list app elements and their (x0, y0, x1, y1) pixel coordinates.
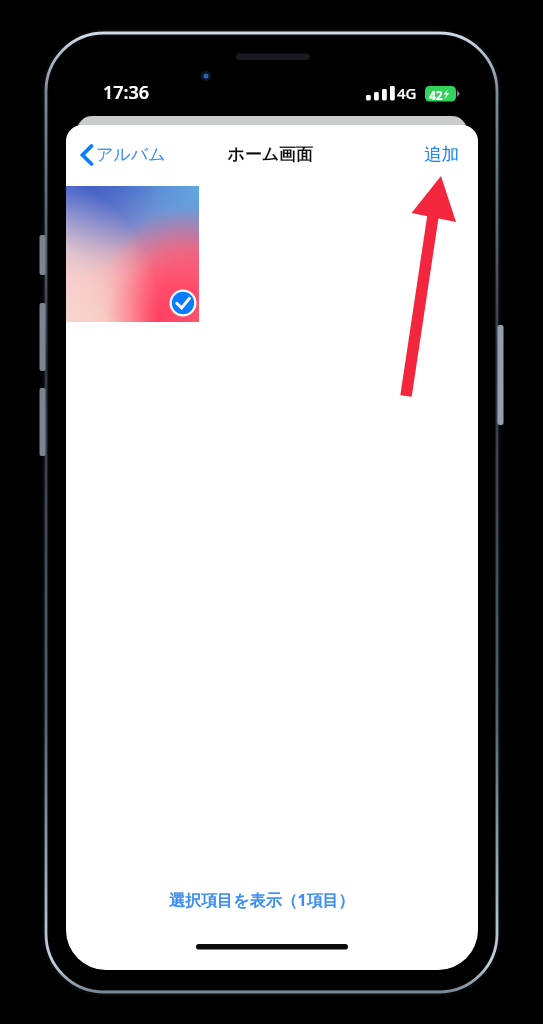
staticText: 42 (429, 87, 443, 103)
staticText: ホーム画面 (227, 144, 313, 165)
staticText: アルバム (96, 144, 166, 165)
button[interactable] (161, 882, 383, 919)
staticText: 17:36 (103, 80, 150, 105)
button[interactable] (418, 137, 476, 173)
button[interactable]: Wallpaper photo, selected (66, 186, 199, 322)
staticText: 追加 (424, 143, 459, 165)
staticText: 4G (397, 83, 417, 103)
staticText: 選択項目を表示（1項目） (169, 889, 355, 911)
button[interactable] (74, 139, 174, 172)
